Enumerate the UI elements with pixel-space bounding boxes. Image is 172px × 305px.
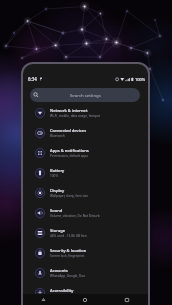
staticText: Storage bbox=[50, 228, 66, 234]
button[interactable]: Display bbox=[23, 183, 148, 203]
button[interactable]: Accessibility bbox=[23, 283, 148, 303]
staticText: Wallpaper, sleep, font size bbox=[50, 194, 88, 198]
button[interactable]: Back bbox=[23, 294, 64, 305]
staticText: Screen lock, fingerprint bbox=[50, 254, 85, 258]
button[interactable]: Search settings bbox=[30, 88, 140, 102]
staticText: Permissions, default apps bbox=[50, 154, 88, 158]
staticText: Network & internet bbox=[50, 108, 88, 114]
staticText: Apps & notifications bbox=[50, 148, 89, 154]
button[interactable]: Recent apps bbox=[106, 294, 148, 305]
staticText: 44% used - 13.86 GB free bbox=[50, 234, 87, 238]
staticText: Connected devices bbox=[50, 128, 87, 134]
staticText: Search settings bbox=[70, 92, 101, 98]
button[interactable]: Sound bbox=[23, 203, 148, 223]
staticText: Display bbox=[50, 188, 65, 194]
staticText: Accounts bbox=[50, 268, 68, 274]
button[interactable]: Home bbox=[64, 294, 106, 305]
staticText: Accessibility bbox=[50, 288, 74, 294]
button[interactable]: Network & internet bbox=[23, 103, 148, 123]
button[interactable]: Security & location bbox=[23, 243, 148, 263]
staticText: Battery bbox=[50, 168, 65, 174]
staticText: Bluetooth bbox=[50, 134, 65, 138]
button[interactable]: Apps & notifications bbox=[23, 143, 148, 163]
button[interactable]: Accounts bbox=[23, 263, 148, 283]
button[interactable]: Storage bbox=[23, 223, 148, 243]
staticText: 100% bbox=[50, 174, 58, 178]
staticText: Sound bbox=[50, 208, 63, 214]
staticText: Wi-Fi, mobile, data usage, hotspot bbox=[50, 114, 101, 118]
staticText: Security & location bbox=[50, 248, 87, 254]
staticText: 6:34 bbox=[28, 76, 37, 82]
staticText: Volume, vibration, Do Not Disturb bbox=[50, 214, 100, 218]
button[interactable]: Connected devices bbox=[23, 123, 148, 143]
button[interactable]: Battery bbox=[23, 163, 148, 183]
staticText: WhatsApp, Google, Duo bbox=[50, 274, 86, 278]
staticText: 100% bbox=[135, 77, 146, 82]
